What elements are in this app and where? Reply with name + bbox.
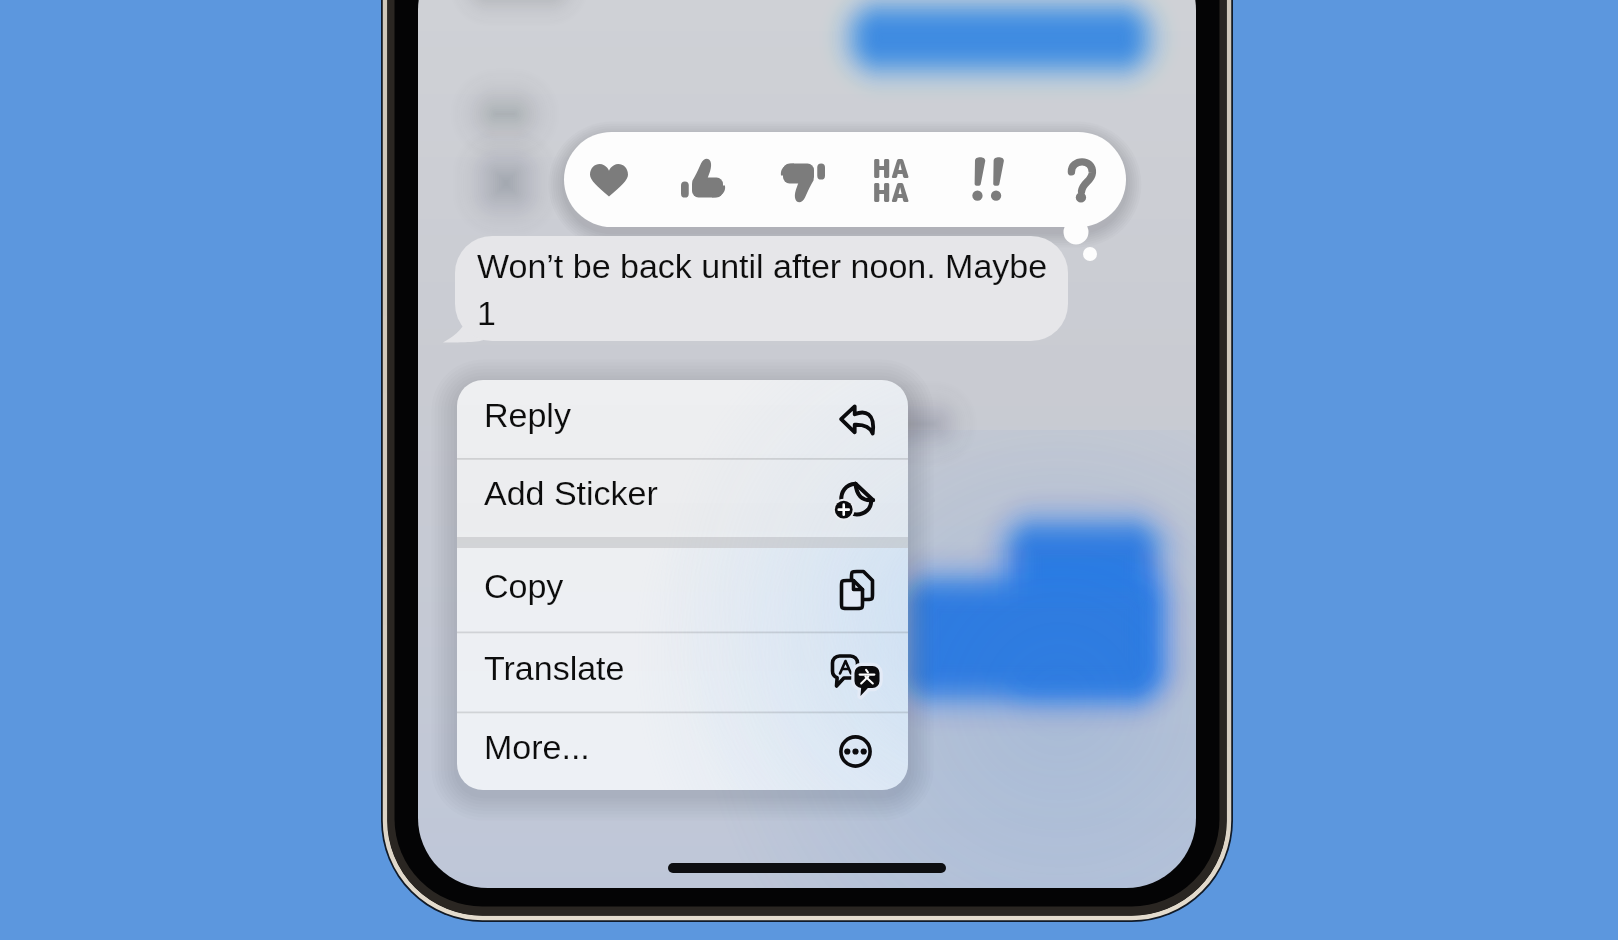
staticText: Add Sticker xyxy=(484,474,658,512)
button[interactable]: Thumbs up reaction xyxy=(661,137,745,223)
button[interactable]: Haha reaction xyxy=(844,137,936,223)
staticText: Won’t be back until after noon. Maybe 1 xyxy=(477,247,1051,333)
staticText: More... xyxy=(484,728,590,766)
button[interactable]: Translate xyxy=(457,633,908,713)
button[interactable]: Exclamation reaction xyxy=(942,137,1026,223)
button[interactable]: Reply xyxy=(457,380,908,459)
button[interactable]: Question reaction xyxy=(1036,137,1120,223)
button[interactable]: Won’t be back until after noon. Maybe 1 xyxy=(477,247,1051,339)
button[interactable]: Copy xyxy=(457,548,908,633)
button[interactable]: More... xyxy=(457,713,908,790)
button[interactable]: Add Sticker xyxy=(457,459,908,537)
staticText: Translate xyxy=(484,649,625,687)
button[interactable]: Heart reaction xyxy=(567,137,651,223)
staticText: Copy xyxy=(484,567,564,605)
staticText: HA HA xyxy=(872,150,909,210)
staticText: Reply xyxy=(484,396,571,434)
button[interactable]: Thumbs down reaction xyxy=(755,137,839,223)
